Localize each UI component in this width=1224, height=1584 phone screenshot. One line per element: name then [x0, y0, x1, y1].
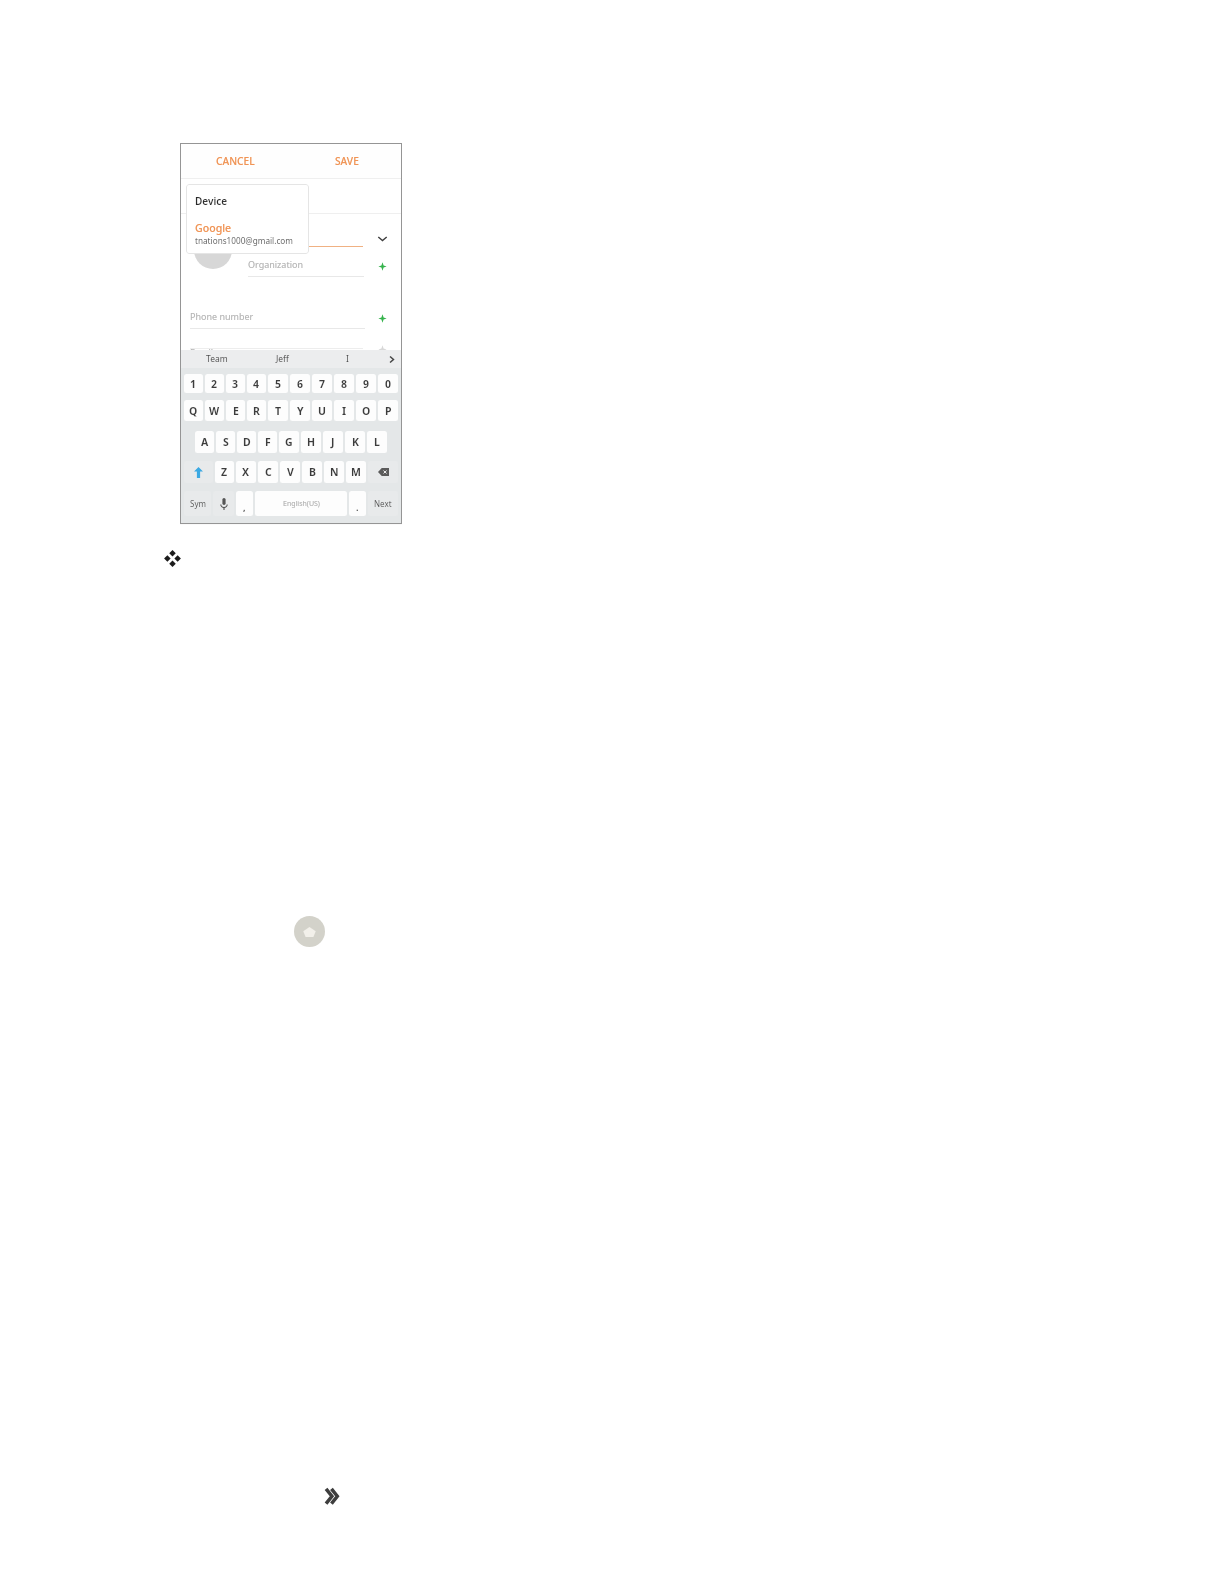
button[interactable]: Y	[290, 400, 310, 421]
staticText: 4	[253, 377, 260, 391]
staticText: Q	[189, 404, 198, 418]
button[interactable]: 7	[312, 374, 332, 393]
button[interactable]: C	[258, 461, 278, 483]
button[interactable]: Voice input	[213, 491, 234, 516]
staticText: M	[351, 465, 361, 479]
button[interactable]: O	[356, 400, 376, 421]
button[interactable]: Backspace	[368, 461, 398, 483]
button[interactable]: K	[345, 431, 365, 453]
staticText: Next	[374, 498, 392, 509]
staticText: N	[330, 465, 339, 479]
button[interactable]: 1	[184, 374, 203, 393]
staticText: X	[242, 465, 250, 479]
staticText: D	[243, 435, 251, 449]
staticText: ,	[243, 501, 246, 513]
button[interactable]: F	[258, 431, 277, 453]
staticText: 1	[190, 377, 197, 391]
staticText: J	[331, 435, 335, 449]
button[interactable]: Move handle	[162, 548, 183, 569]
button[interactable]: P	[378, 400, 398, 421]
staticText: B	[309, 465, 316, 479]
staticText: I	[342, 404, 347, 418]
button[interactable]: X	[236, 461, 256, 483]
staticText: H	[307, 435, 316, 449]
button[interactable]: Team	[184, 350, 250, 368]
button[interactable]: S	[216, 431, 235, 453]
button[interactable]: D	[237, 431, 256, 453]
staticText: G	[285, 435, 293, 449]
button[interactable]: Next	[321, 1484, 345, 1508]
button[interactable]: R	[247, 400, 266, 421]
button[interactable]: Shift	[184, 461, 213, 483]
button[interactable]: E	[226, 400, 245, 421]
button[interactable]: 9	[356, 374, 376, 393]
button[interactable]: .	[349, 491, 366, 516]
button[interactable]: 8	[334, 374, 354, 393]
staticText: Z	[221, 465, 228, 479]
button[interactable]: 4	[247, 374, 266, 393]
button[interactable]: Google	[186, 221, 309, 246]
button[interactable]: 2	[205, 374, 224, 393]
button[interactable]: W	[205, 400, 224, 421]
button[interactable]: G	[279, 431, 299, 453]
button[interactable]: L	[367, 431, 387, 453]
button[interactable]: 5	[268, 374, 288, 393]
button[interactable]: Z	[215, 461, 234, 483]
staticText: W	[209, 404, 220, 418]
button[interactable]: Jeff	[250, 350, 315, 368]
button[interactable]: SAVE	[291, 143, 402, 178]
button[interactable]: A	[195, 431, 214, 453]
staticText: Y	[297, 404, 304, 418]
staticText: Email	[190, 346, 214, 358]
staticText: Jeff	[276, 353, 289, 365]
button[interactable]: Sym	[184, 491, 211, 516]
staticText: E	[233, 404, 239, 418]
button[interactable]: More suggestions	[380, 350, 402, 368]
button[interactable]: ,	[236, 491, 253, 516]
staticText: Google	[195, 221, 232, 235]
staticText: Sym	[190, 498, 206, 509]
staticText: 5	[275, 377, 282, 391]
staticText: Device	[195, 194, 228, 208]
button[interactable]: CANCEL	[180, 143, 291, 178]
staticText: 9	[363, 377, 370, 391]
staticText: SAVE	[335, 154, 359, 168]
button[interactable]: English(US)	[255, 491, 347, 516]
staticText: 2	[211, 377, 218, 391]
staticText: 6	[297, 377, 304, 391]
button[interactable]: Image placeholder	[294, 916, 325, 947]
button[interactable]: I	[334, 400, 354, 421]
button[interactable]: 0	[378, 374, 398, 393]
button[interactable]: Expand name fields	[375, 231, 390, 246]
staticText: V	[287, 465, 294, 479]
button[interactable]: M	[346, 461, 366, 483]
button[interactable]: N	[324, 461, 344, 483]
staticText: C	[265, 465, 272, 479]
button[interactable]: U	[312, 400, 332, 421]
button[interactable]: V	[280, 461, 300, 483]
staticText: R	[253, 404, 260, 418]
button[interactable]: Next	[368, 491, 398, 516]
staticText: P	[385, 404, 392, 418]
button[interactable]: J	[323, 431, 343, 453]
button[interactable]: 6	[290, 374, 310, 393]
button[interactable]: T	[268, 400, 288, 421]
staticText: CANCEL	[216, 154, 255, 168]
staticText: Organization	[248, 258, 303, 270]
staticText: T	[275, 404, 282, 418]
staticText: O	[362, 404, 371, 418]
staticText: Phone number	[190, 310, 254, 322]
staticText: U	[318, 404, 326, 418]
staticText: 3	[232, 377, 239, 391]
staticText: A	[201, 435, 209, 449]
button[interactable]: 3	[226, 374, 245, 393]
button[interactable]: H	[301, 431, 321, 453]
staticText: English(US)	[283, 499, 320, 509]
button[interactable]: Q	[184, 400, 203, 421]
staticText: I	[346, 353, 349, 365]
staticText: 7	[319, 377, 326, 391]
button[interactable]: I	[315, 350, 380, 368]
staticText: 8	[341, 377, 348, 391]
button[interactable]: B	[302, 461, 322, 483]
button[interactable]: Device	[186, 184, 309, 217]
